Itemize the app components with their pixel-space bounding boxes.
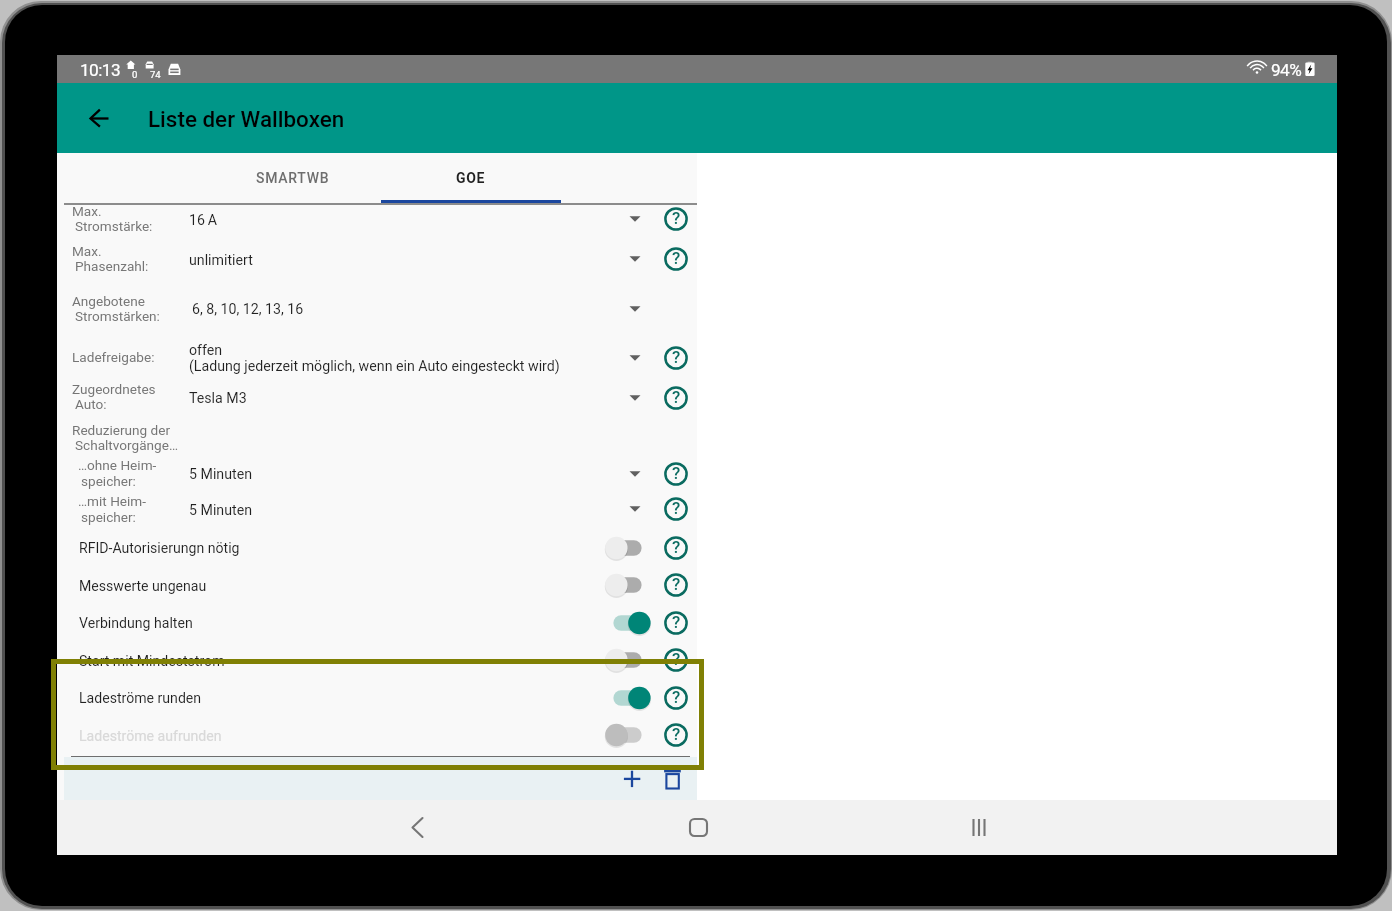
staticText: ?: [672, 724, 681, 744]
button[interactable]: …mit Heim-: [57, 492, 697, 528]
button[interactable]: Start mit Mindeststrom: [57, 642, 697, 680]
button[interactable]: …ohne Heim-: [57, 456, 697, 492]
button[interactable]: Ladeströme aufrunden: [57, 717, 697, 755]
staticText: 94%: [1271, 60, 1302, 80]
staticText: Max.: [72, 203, 102, 219]
other: Fahrzeug: [167, 60, 183, 76]
button[interactable]: Hilfe: [662, 571, 690, 599]
staticText: ?: [672, 687, 681, 707]
staticText: ?: [672, 347, 681, 367]
button[interactable]: Hilfe: [662, 495, 690, 523]
button[interactable]: RFID-Autorisierungn nötig: [57, 529, 697, 567]
other: Zuhause: [124, 58, 138, 72]
button[interactable]: Hilfe: [662, 534, 690, 562]
button[interactable]: Startbildschirm: [605, 800, 790, 855]
staticText: ?: [672, 498, 681, 518]
staticText: ?: [672, 463, 681, 483]
staticText: ?: [672, 537, 681, 557]
staticText: Liste der Wallboxen: [148, 106, 345, 132]
staticText: 74: [150, 69, 161, 80]
staticText: Messwerte ungenau: [79, 578, 207, 595]
staticText: 0: [132, 69, 138, 80]
button[interactable]: Zurück: [76, 94, 125, 143]
staticText: ?: [672, 574, 681, 594]
button[interactable]: Auswahl öffnen: [621, 297, 649, 321]
staticText: unlimitiert: [189, 252, 253, 269]
staticText: 5 Minuten: [189, 502, 252, 519]
staticText: Tesla M3: [189, 390, 247, 407]
other: Akku: [1304, 60, 1318, 78]
button[interactable]: Max.: [57, 204, 697, 244]
staticText: (Ladung jederzeit möglich, wenn ein Auto…: [189, 358, 560, 375]
button[interactable]: Messwerte ungenau: [57, 567, 697, 605]
staticText: Stromstärken:: [75, 308, 160, 324]
staticText: offen: [189, 342, 223, 359]
staticText: GOE: [456, 170, 486, 186]
button[interactable]: Aus: [603, 644, 655, 676]
button[interactable]: Zurück: [230, 800, 605, 855]
staticText: speicher:: [81, 509, 136, 525]
button[interactable]: Ein: [603, 682, 655, 714]
button[interactable]: Ladefreigabe:: [57, 336, 697, 380]
button[interactable]: Auswahl öffnen: [621, 346, 649, 370]
button[interactable]: Zugeordnetes: [57, 382, 697, 420]
button[interactable]: Hilfe: [662, 245, 690, 273]
button[interactable]: Angebotene: [57, 288, 697, 332]
button[interactable]: Auswahl öffnen: [621, 462, 649, 486]
staticText: Angebotene: [72, 293, 145, 309]
staticText: ?: [672, 387, 681, 407]
staticText: 10:13: [80, 60, 121, 80]
staticText: ?: [672, 208, 681, 228]
button[interactable]: Ladeströme runden: [57, 679, 697, 717]
button[interactable]: Auswahl öffnen: [621, 386, 649, 410]
staticText: 6, 8, 10, 12, 13, 16: [192, 301, 304, 318]
staticText: Reduzierung der: [72, 422, 171, 438]
button[interactable]: Löschen: [654, 761, 690, 797]
button[interactable]: Hilfe: [662, 460, 690, 488]
staticText: Ladeströme runden: [79, 690, 202, 707]
button[interactable]: Aus: [603, 719, 655, 751]
button[interactable]: Auswahl öffnen: [621, 497, 649, 521]
button[interactable]: Auswahl öffnen: [621, 207, 649, 231]
staticText: Stromstärke:: [75, 218, 153, 234]
button[interactable]: Aus: [603, 532, 655, 564]
button[interactable]: Verbindung halten: [57, 604, 697, 642]
staticText: …mit Heim-: [78, 493, 147, 509]
staticText: Zugeordnetes: [72, 381, 156, 397]
other: WLAN: [1247, 60, 1267, 77]
staticText: …ohne Heim-: [78, 457, 157, 473]
staticText: ?: [672, 612, 681, 632]
button[interactable]: Hilfe: [662, 646, 690, 674]
button[interactable]: Auswahl öffnen: [621, 247, 649, 271]
staticText: ?: [672, 649, 681, 669]
staticText: Ladeströme aufrunden: [79, 728, 222, 745]
staticText: Schaltvorgänge…: [75, 437, 179, 453]
staticText: Ladefreigabe:: [72, 349, 155, 365]
button[interactable]: Hilfe: [662, 609, 690, 637]
staticText: Phasenzahl:: [75, 258, 149, 274]
staticText: SMARTWB: [256, 170, 330, 186]
button[interactable]: SMARTWB: [202, 153, 381, 203]
staticText: Max.: [72, 243, 102, 259]
staticText: ?: [672, 248, 681, 268]
other: Auto: [144, 58, 158, 72]
button[interactable]: Hilfe: [662, 384, 690, 412]
button[interactable]: GOE: [381, 153, 560, 203]
button[interactable]: Hinzufügen: [614, 761, 650, 797]
button[interactable]: Hilfe: [662, 684, 690, 712]
button[interactable]: Ein: [603, 607, 655, 639]
staticText: Verbindung halten: [79, 615, 193, 632]
button[interactable]: Hilfe: [662, 721, 690, 749]
staticText: Auto:: [75, 396, 107, 412]
button[interactable]: Letzte Apps: [790, 800, 1170, 855]
button[interactable]: Aus: [603, 569, 655, 601]
button[interactable]: Hilfe: [662, 344, 690, 372]
button[interactable]: Hilfe: [662, 205, 690, 233]
staticText: speicher:: [81, 473, 136, 489]
button[interactable]: Max.: [57, 244, 697, 284]
staticText: 16 A: [189, 212, 218, 229]
staticText: Start mit Mindeststrom: [79, 653, 225, 670]
staticText: RFID-Autorisierungn nötig: [79, 540, 240, 557]
staticText: 5 Minuten: [189, 466, 252, 483]
